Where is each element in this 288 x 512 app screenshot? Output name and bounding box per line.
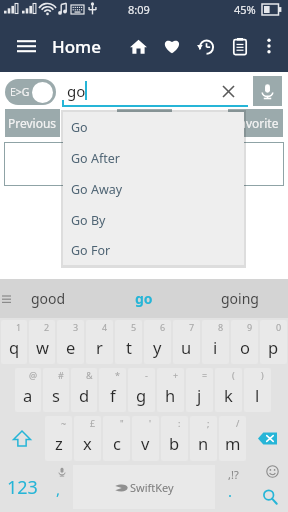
staticText: e	[66, 336, 76, 358]
staticText: Go For	[71, 242, 111, 259]
staticText: 4	[102, 321, 108, 333]
button[interactable]: 2	[29, 320, 55, 364]
button[interactable]: /	[219, 416, 246, 461]
button[interactable]: go	[96, 279, 192, 318]
staticText: £	[90, 417, 96, 429]
button[interactable]: Favorites	[158, 27, 185, 65]
button[interactable]: Search	[251, 463, 288, 511]
button[interactable]: More options	[255, 27, 282, 65]
button[interactable]: ~	[45, 416, 72, 461]
button[interactable]: Comma and voice input	[44, 463, 73, 511]
button[interactable]: Menu	[8, 28, 44, 64]
button[interactable]: *	[99, 368, 126, 412]
button[interactable]: ;	[190, 416, 217, 461]
button[interactable]: £	[74, 416, 101, 461]
staticText: Go	[71, 119, 88, 136]
button[interactable]: Voice search	[253, 76, 282, 106]
button[interactable]: Shift	[0, 414, 44, 463]
staticText: Go After	[71, 150, 120, 167]
button[interactable]: 3	[57, 320, 84, 364]
staticText: &	[86, 369, 93, 381]
staticText: 9	[247, 321, 253, 333]
staticText: 8	[218, 321, 224, 333]
staticText: v	[141, 432, 150, 454]
button[interactable]: Go By	[63, 205, 244, 236]
button[interactable]: Favorite	[228, 109, 283, 137]
staticText: ;	[207, 417, 210, 429]
staticText: l	[255, 384, 260, 406]
staticText: a	[23, 384, 33, 406]
staticText: z	[55, 432, 63, 454]
button[interactable]: 0	[260, 320, 287, 364]
staticText: 7	[189, 321, 195, 333]
staticText: m	[225, 432, 241, 454]
staticText: #	[58, 369, 64, 381]
button[interactable]: 123	[0, 463, 44, 511]
staticText: Home	[52, 35, 101, 58]
button[interactable]: Go	[63, 112, 244, 143]
button[interactable]: -	[128, 368, 155, 412]
staticText: 0	[276, 321, 282, 333]
button[interactable]: '	[132, 416, 159, 461]
button[interactable]: Next	[117, 109, 172, 137]
staticText: Previous	[8, 115, 57, 131]
staticText: r	[96, 336, 103, 358]
button[interactable]: &	[71, 368, 97, 412]
staticText: o	[240, 336, 250, 358]
button[interactable]: good	[0, 279, 96, 318]
staticText: j	[197, 384, 202, 406]
staticText: t	[126, 336, 132, 358]
staticText: 1	[16, 321, 22, 333]
staticText: go	[135, 289, 153, 308]
staticText: u	[181, 336, 192, 358]
button[interactable]: 7	[173, 320, 200, 364]
button[interactable]: going	[192, 279, 288, 318]
button[interactable]: =	[186, 368, 213, 412]
staticText: SwiftKey	[130, 480, 174, 495]
staticText: k	[224, 384, 233, 406]
button[interactable]: (	[215, 368, 242, 412]
button[interactable]: Notes	[226, 27, 253, 65]
button[interactable]: 1	[1, 320, 27, 364]
button[interactable]: #	[43, 368, 69, 412]
staticText: 5	[131, 321, 137, 333]
button[interactable]: Previous	[5, 109, 60, 137]
button[interactable]: 5	[115, 320, 142, 364]
button[interactable]: @	[15, 368, 41, 412]
button[interactable]: 9	[231, 320, 258, 364]
staticText: w	[36, 336, 49, 358]
staticText: Go By	[71, 212, 106, 229]
button[interactable]: Home	[125, 27, 152, 65]
staticText: go	[67, 81, 86, 101]
button[interactable]: "	[103, 416, 130, 461]
staticText: ,!?	[228, 467, 239, 482]
staticText: '	[149, 417, 152, 429]
staticText: :	[178, 417, 181, 429]
button[interactable]: Clear text	[217, 80, 239, 102]
staticText: .	[228, 481, 233, 501]
staticText: 6	[160, 321, 166, 333]
staticText: ~	[61, 417, 67, 429]
button[interactable]: 8	[202, 320, 229, 364]
button[interactable]: 6	[144, 320, 171, 364]
button[interactable]: +	[157, 368, 184, 412]
button[interactable]: Space	[73, 465, 215, 509]
button[interactable]: History	[192, 27, 219, 65]
button[interactable]: Go After	[63, 143, 244, 174]
button[interactable]: E>G	[5, 79, 56, 105]
button[interactable]: 4	[86, 320, 113, 364]
button[interactable]: Go For	[63, 236, 244, 265]
staticText: +	[173, 369, 179, 381]
staticText: Go Away	[71, 181, 123, 198]
staticText: n	[198, 432, 209, 454]
staticText: *	[115, 369, 120, 381]
button[interactable]: Backspace	[247, 414, 288, 463]
staticText: =	[202, 369, 208, 381]
button[interactable]: Go Away	[63, 174, 244, 205]
staticText: 3	[73, 321, 79, 333]
button[interactable]: :	[161, 416, 188, 461]
staticText: f	[110, 384, 116, 406]
staticText: ,	[56, 479, 61, 499]
button[interactable]: ,!?	[215, 463, 251, 511]
button[interactable]: )	[244, 368, 271, 412]
